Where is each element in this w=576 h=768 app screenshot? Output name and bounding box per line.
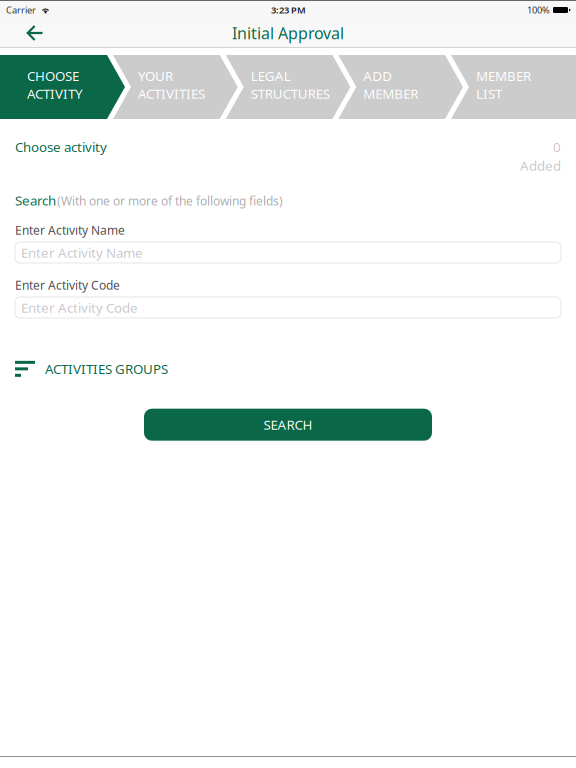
staticText: MEMBER	[476, 67, 531, 85]
staticText: ACTIVITIES GROUPS	[45, 360, 168, 378]
staticText: Enter Activity Code	[21, 299, 138, 316]
staticText: Search	[15, 191, 56, 209]
staticText: MEMBER	[363, 85, 418, 102]
staticText: 3:23 PM	[271, 4, 306, 16]
staticText: Carrier	[6, 4, 36, 16]
button[interactable]: SEARCH	[144, 409, 432, 441]
staticText: ADD	[363, 67, 392, 85]
staticText: (With one or more of the following field…	[57, 193, 283, 209]
staticText: YOUR	[138, 67, 173, 85]
staticText: Choose activity	[15, 138, 107, 156]
staticText: SEARCH	[263, 416, 312, 433]
staticText: 100%	[527, 4, 550, 16]
button[interactable]: Back	[0, 19, 57, 47]
staticText: LEGAL	[251, 67, 291, 85]
staticText: ACTIVITY	[27, 85, 83, 102]
staticText: Initial Approval	[232, 22, 344, 44]
staticText: Enter Activity Name	[15, 222, 125, 238]
button[interactable]: ACTIVITIES GROUPS	[15, 318, 561, 378]
staticText: STRUCTURES	[251, 85, 330, 102]
staticText: Added	[520, 157, 561, 174]
staticText: CHOOSE	[27, 67, 79, 85]
staticText: 0	[553, 138, 561, 156]
staticText: ACTIVITIES	[138, 85, 205, 102]
staticText: LIST	[476, 85, 502, 102]
staticText: Enter Activity Code	[15, 277, 120, 293]
staticText: Enter Activity Name	[21, 244, 143, 261]
